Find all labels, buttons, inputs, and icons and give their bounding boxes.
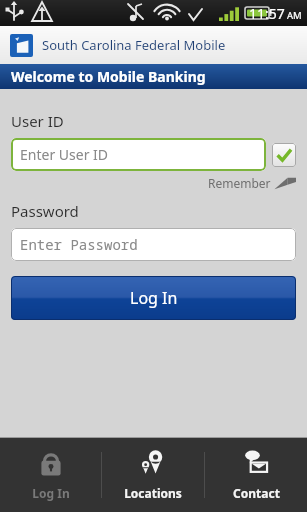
staticText: Welcome to Mobile Banking bbox=[11, 67, 206, 86]
staticText: Locations bbox=[124, 485, 182, 501]
staticText: Enter User ID bbox=[20, 145, 109, 164]
button[interactable]: Enter Password bbox=[11, 228, 296, 261]
staticText: Log In bbox=[32, 485, 70, 501]
staticText: Contact bbox=[233, 485, 280, 501]
button[interactable]: Log In bbox=[11, 276, 296, 320]
staticText: Password bbox=[11, 201, 79, 221]
staticText: Log In bbox=[130, 287, 178, 309]
staticText: Remember bbox=[208, 175, 271, 191]
staticText: Enter Password bbox=[20, 235, 138, 254]
staticText: User ID bbox=[11, 111, 64, 131]
staticText: 11:57 bbox=[249, 4, 285, 23]
button[interactable]: Contact bbox=[205, 438, 307, 512]
staticText: South Carolina Federal Mobile bbox=[42, 36, 226, 54]
button[interactable]: Enter User ID bbox=[11, 138, 266, 171]
button[interactable]: Remember User ID bbox=[272, 143, 296, 167]
button[interactable]: Log In bbox=[0, 438, 101, 512]
staticText: AM bbox=[287, 9, 302, 22]
button[interactable]: Locations bbox=[102, 438, 204, 512]
